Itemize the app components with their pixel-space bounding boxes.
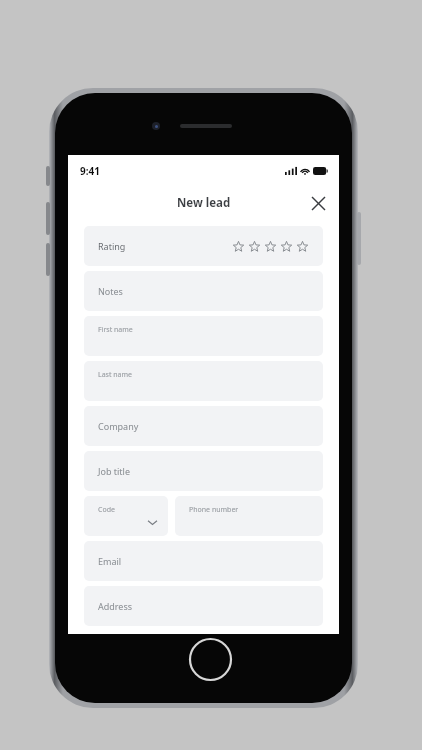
staticText: Rating (98, 240, 126, 252)
button[interactable]: Code (84, 496, 168, 536)
staticText: Email (98, 555, 122, 567)
button[interactable]: Address (84, 586, 323, 626)
staticText: 9:41 (80, 164, 100, 178)
staticText: Notes (98, 285, 123, 297)
button[interactable]: Email (84, 541, 323, 581)
button[interactable]: Rating (84, 226, 323, 266)
staticText: Address (98, 600, 133, 612)
button[interactable]: Phone number (175, 496, 323, 536)
staticText: Job title (98, 465, 130, 477)
button[interactable]: Last name (84, 361, 323, 401)
staticText: Last name (98, 370, 133, 380)
staticText: Company (98, 420, 139, 432)
button[interactable]: Rate 1 stars (232, 240, 245, 253)
button[interactable]: First name (84, 316, 323, 356)
staticText: Phone number (189, 505, 239, 515)
button[interactable]: Rate 4 stars (280, 240, 293, 253)
button[interactable]: Close (307, 192, 329, 214)
button[interactable]: Rate 3 stars (264, 240, 277, 253)
staticText: First name (98, 325, 133, 335)
button[interactable]: Rate 5 stars (296, 240, 309, 253)
staticText: New lead (177, 195, 231, 211)
button[interactable]: Rate 2 stars (248, 240, 261, 253)
button[interactable]: Company (84, 406, 323, 446)
button[interactable]: Job title (84, 451, 323, 491)
button[interactable]: Notes (84, 271, 323, 311)
staticText: Code (98, 505, 115, 515)
